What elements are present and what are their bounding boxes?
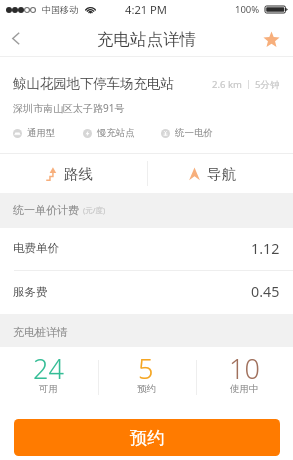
staticText: 5分钟: [255, 78, 280, 91]
staticText: 慢充站点: [97, 127, 135, 139]
staticText: 1.12: [251, 239, 280, 258]
staticText: 导航: [207, 165, 236, 183]
staticText: 服务费: [13, 285, 48, 299]
button[interactable]: 路线: [0, 154, 146, 193]
staticText: 使用中: [230, 383, 259, 395]
staticText: 预约: [130, 427, 165, 449]
staticText: 统一电价: [175, 127, 213, 139]
staticText: 深圳市南山区太子路91号: [13, 101, 125, 115]
staticText: 充电桩详情: [13, 325, 68, 339]
staticText: 5: [138, 350, 154, 387]
button[interactable]: 导航: [146, 154, 293, 193]
staticText: 充电站点详情: [97, 29, 196, 50]
staticText: 2.6 km: [212, 78, 242, 91]
staticText: 100%: [235, 3, 260, 16]
staticText: 0.45: [251, 282, 280, 301]
staticText: 电费单价: [13, 241, 59, 255]
staticText: 鲸山花园地下停车场充电站: [13, 75, 174, 92]
staticText: (元/度): [83, 205, 106, 215]
button[interactable]: Back: [0, 19, 34, 57]
staticText: 路线: [64, 165, 93, 183]
staticText: 24: [33, 350, 64, 387]
staticText: 通用型: [27, 127, 56, 139]
staticText: 10: [229, 350, 260, 387]
staticText: 4:21 PM: [125, 2, 168, 17]
staticText: 统一单价计费: [13, 203, 79, 217]
button[interactable]: Favorite: [257, 19, 293, 57]
staticText: 预约: [137, 383, 156, 395]
staticText: 中国移动: [42, 4, 78, 15]
staticText: 可用: [39, 383, 58, 395]
button[interactable]: 预约: [14, 419, 280, 456]
